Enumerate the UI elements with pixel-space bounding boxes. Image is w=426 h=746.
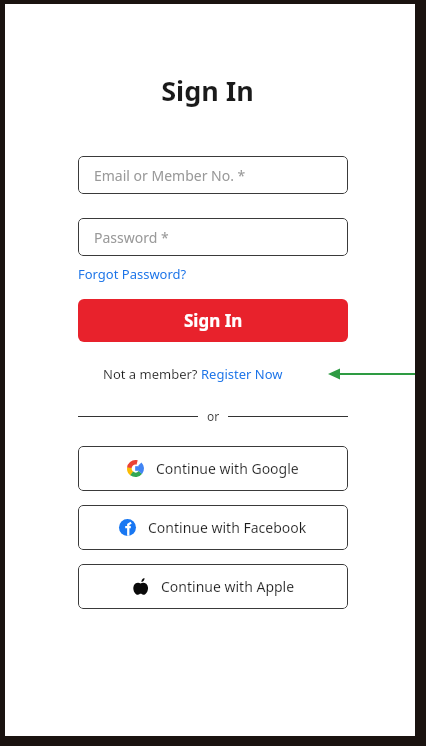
other: Apple logo bbox=[132, 578, 149, 595]
staticText: Sign In bbox=[161, 72, 254, 109]
button[interactable]: Google logo bbox=[78, 446, 348, 491]
button[interactable]: Sign In bbox=[78, 299, 348, 342]
button[interactable]: Email or Member No. * bbox=[78, 156, 348, 194]
button[interactable]: Apple logo bbox=[78, 564, 348, 609]
staticText: Forgot Password? bbox=[78, 265, 187, 283]
staticText: Continue with Apple bbox=[161, 577, 295, 596]
staticText: Email or Member No. * bbox=[94, 166, 246, 185]
staticText: Continue with Google bbox=[156, 459, 299, 478]
button[interactable]: Facebook logo bbox=[78, 505, 348, 550]
button[interactable]: Forgot Password? bbox=[78, 263, 187, 285]
staticText: or bbox=[207, 408, 220, 424]
other: Google logo bbox=[127, 460, 144, 477]
button[interactable]: Register Now bbox=[201, 365, 283, 383]
staticText: Not a member? bbox=[103, 365, 201, 383]
button[interactable]: Password * bbox=[78, 218, 348, 256]
staticText: Password * bbox=[94, 228, 169, 247]
staticText: Register Now bbox=[201, 365, 283, 383]
staticText: Sign In bbox=[184, 309, 243, 332]
staticText: Continue with Facebook bbox=[148, 518, 307, 537]
other: Facebook logo bbox=[119, 519, 136, 536]
